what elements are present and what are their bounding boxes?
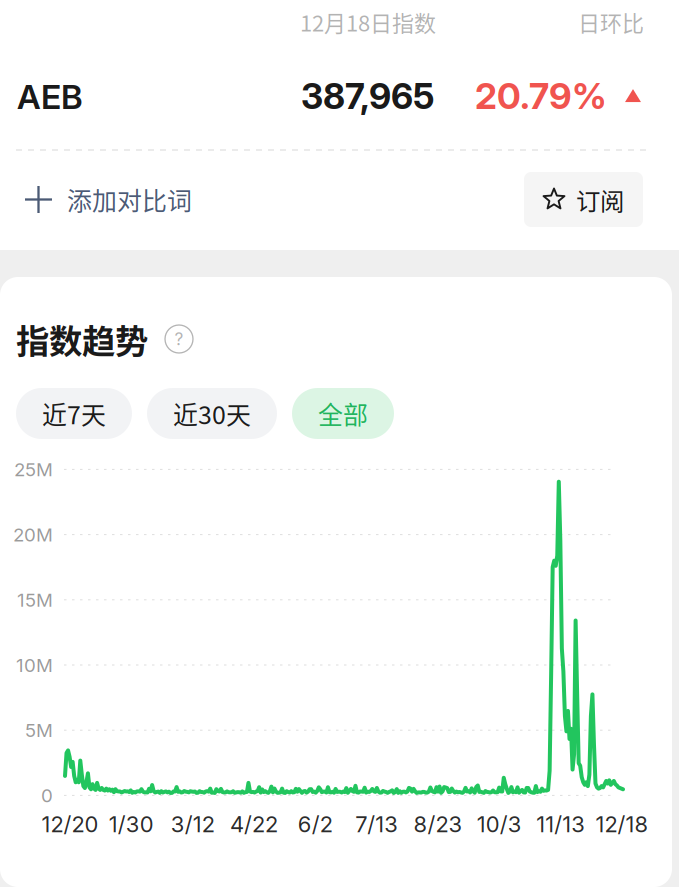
staticText: 6/2	[298, 811, 333, 838]
staticText: 12/18	[595, 811, 648, 838]
staticText: 0	[41, 784, 53, 807]
staticText: 日环比	[578, 6, 644, 38]
staticText: 15M	[17, 589, 53, 611]
staticText: 4/22	[230, 811, 278, 838]
staticText: 5M	[25, 719, 53, 742]
button[interactable]: 近30天	[147, 388, 277, 439]
staticText: 387,965	[301, 75, 434, 118]
button[interactable]: 近7天	[16, 388, 132, 439]
staticText: 近30天	[173, 395, 251, 431]
staticText: 11/13	[536, 811, 585, 838]
staticText: 20.79%	[475, 74, 607, 118]
staticText: 8/23	[413, 811, 462, 838]
staticText: 近7天	[42, 395, 106, 431]
staticText: 12月18日指数	[300, 6, 436, 38]
staticText: ?	[174, 328, 183, 349]
staticText: 全部	[318, 395, 368, 431]
button[interactable]: 全部	[292, 388, 394, 439]
staticText: 指数趋势	[16, 315, 148, 363]
staticText: 1/30	[109, 811, 154, 838]
staticText: 10/3	[477, 811, 522, 838]
staticText: 3/12	[171, 811, 215, 838]
staticText: AEB	[17, 77, 83, 117]
staticText: 添加对比词	[67, 181, 192, 217]
button[interactable]: 添加对比词	[0, 172, 206, 227]
staticText: 12/20	[41, 811, 98, 838]
staticText: 20M	[13, 523, 53, 546]
staticText: 10M	[16, 654, 53, 676]
staticText: 7/13	[355, 811, 398, 838]
staticText: 25M	[14, 458, 53, 481]
button[interactable]: 订阅	[524, 172, 643, 227]
button[interactable]: 关于指数趋势	[165, 325, 193, 353]
staticText: 订阅	[576, 182, 624, 217]
